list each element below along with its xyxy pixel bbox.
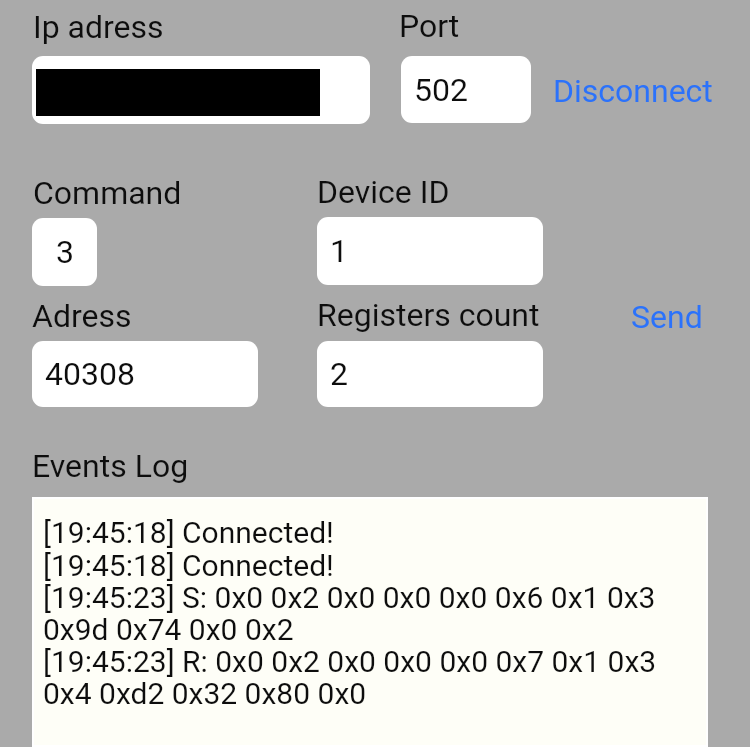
staticText: Events Log xyxy=(32,447,189,485)
button[interactable]: Disconnect xyxy=(540,62,726,120)
staticText: 502 xyxy=(414,71,468,109)
staticText: [19:45:18] Connected! [19:45:18] Connect… xyxy=(43,515,673,711)
staticText: Disconnect xyxy=(553,72,713,110)
staticText: Command xyxy=(33,174,182,212)
staticText: Device ID xyxy=(317,173,450,211)
button[interactable]: 40308 xyxy=(32,341,258,407)
button[interactable]: 1 xyxy=(317,217,543,285)
staticText: 40308 xyxy=(45,355,135,393)
staticText: 3 xyxy=(56,233,74,271)
staticText: Port xyxy=(399,7,460,45)
button[interactable]: 3 xyxy=(32,218,97,286)
button[interactable]: IP address, hidden xyxy=(32,56,370,124)
staticText: Ip adress xyxy=(33,8,164,46)
button[interactable]: 502 xyxy=(401,56,531,123)
staticText: 1 xyxy=(330,232,348,270)
button[interactable]: 2 xyxy=(317,341,543,407)
button[interactable]: Send xyxy=(618,288,716,346)
staticText: Registers count xyxy=(317,296,540,334)
staticText: Send xyxy=(631,298,703,336)
button[interactable]: [19:45:18] Connected! [19:45:18] Connect… xyxy=(32,497,708,747)
staticText: Adress xyxy=(32,297,132,335)
staticText: 2 xyxy=(330,355,348,393)
